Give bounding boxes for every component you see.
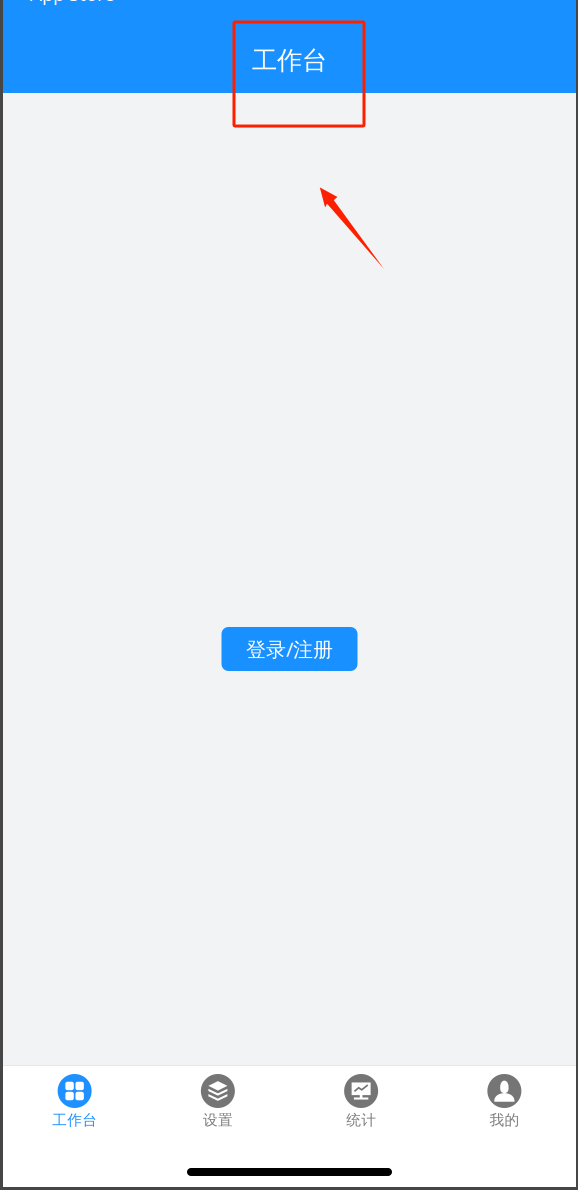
button[interactable]: 设置: [146, 1074, 289, 1136]
staticText: ‹ App Store: [19, 0, 115, 6]
staticText: 登录/注册: [246, 636, 333, 662]
button[interactable]: 工作台: [3, 1074, 146, 1136]
staticText: 我的: [489, 1111, 519, 1129]
staticText: 设置: [203, 1111, 233, 1129]
staticText: 统计: [346, 1111, 376, 1129]
staticText: 工作台: [52, 1111, 97, 1129]
button[interactable]: 统计: [289, 1074, 433, 1136]
button[interactable]: 登录/注册: [221, 627, 357, 671]
staticText: 工作台: [252, 45, 327, 76]
button[interactable]: 我的: [433, 1074, 576, 1136]
